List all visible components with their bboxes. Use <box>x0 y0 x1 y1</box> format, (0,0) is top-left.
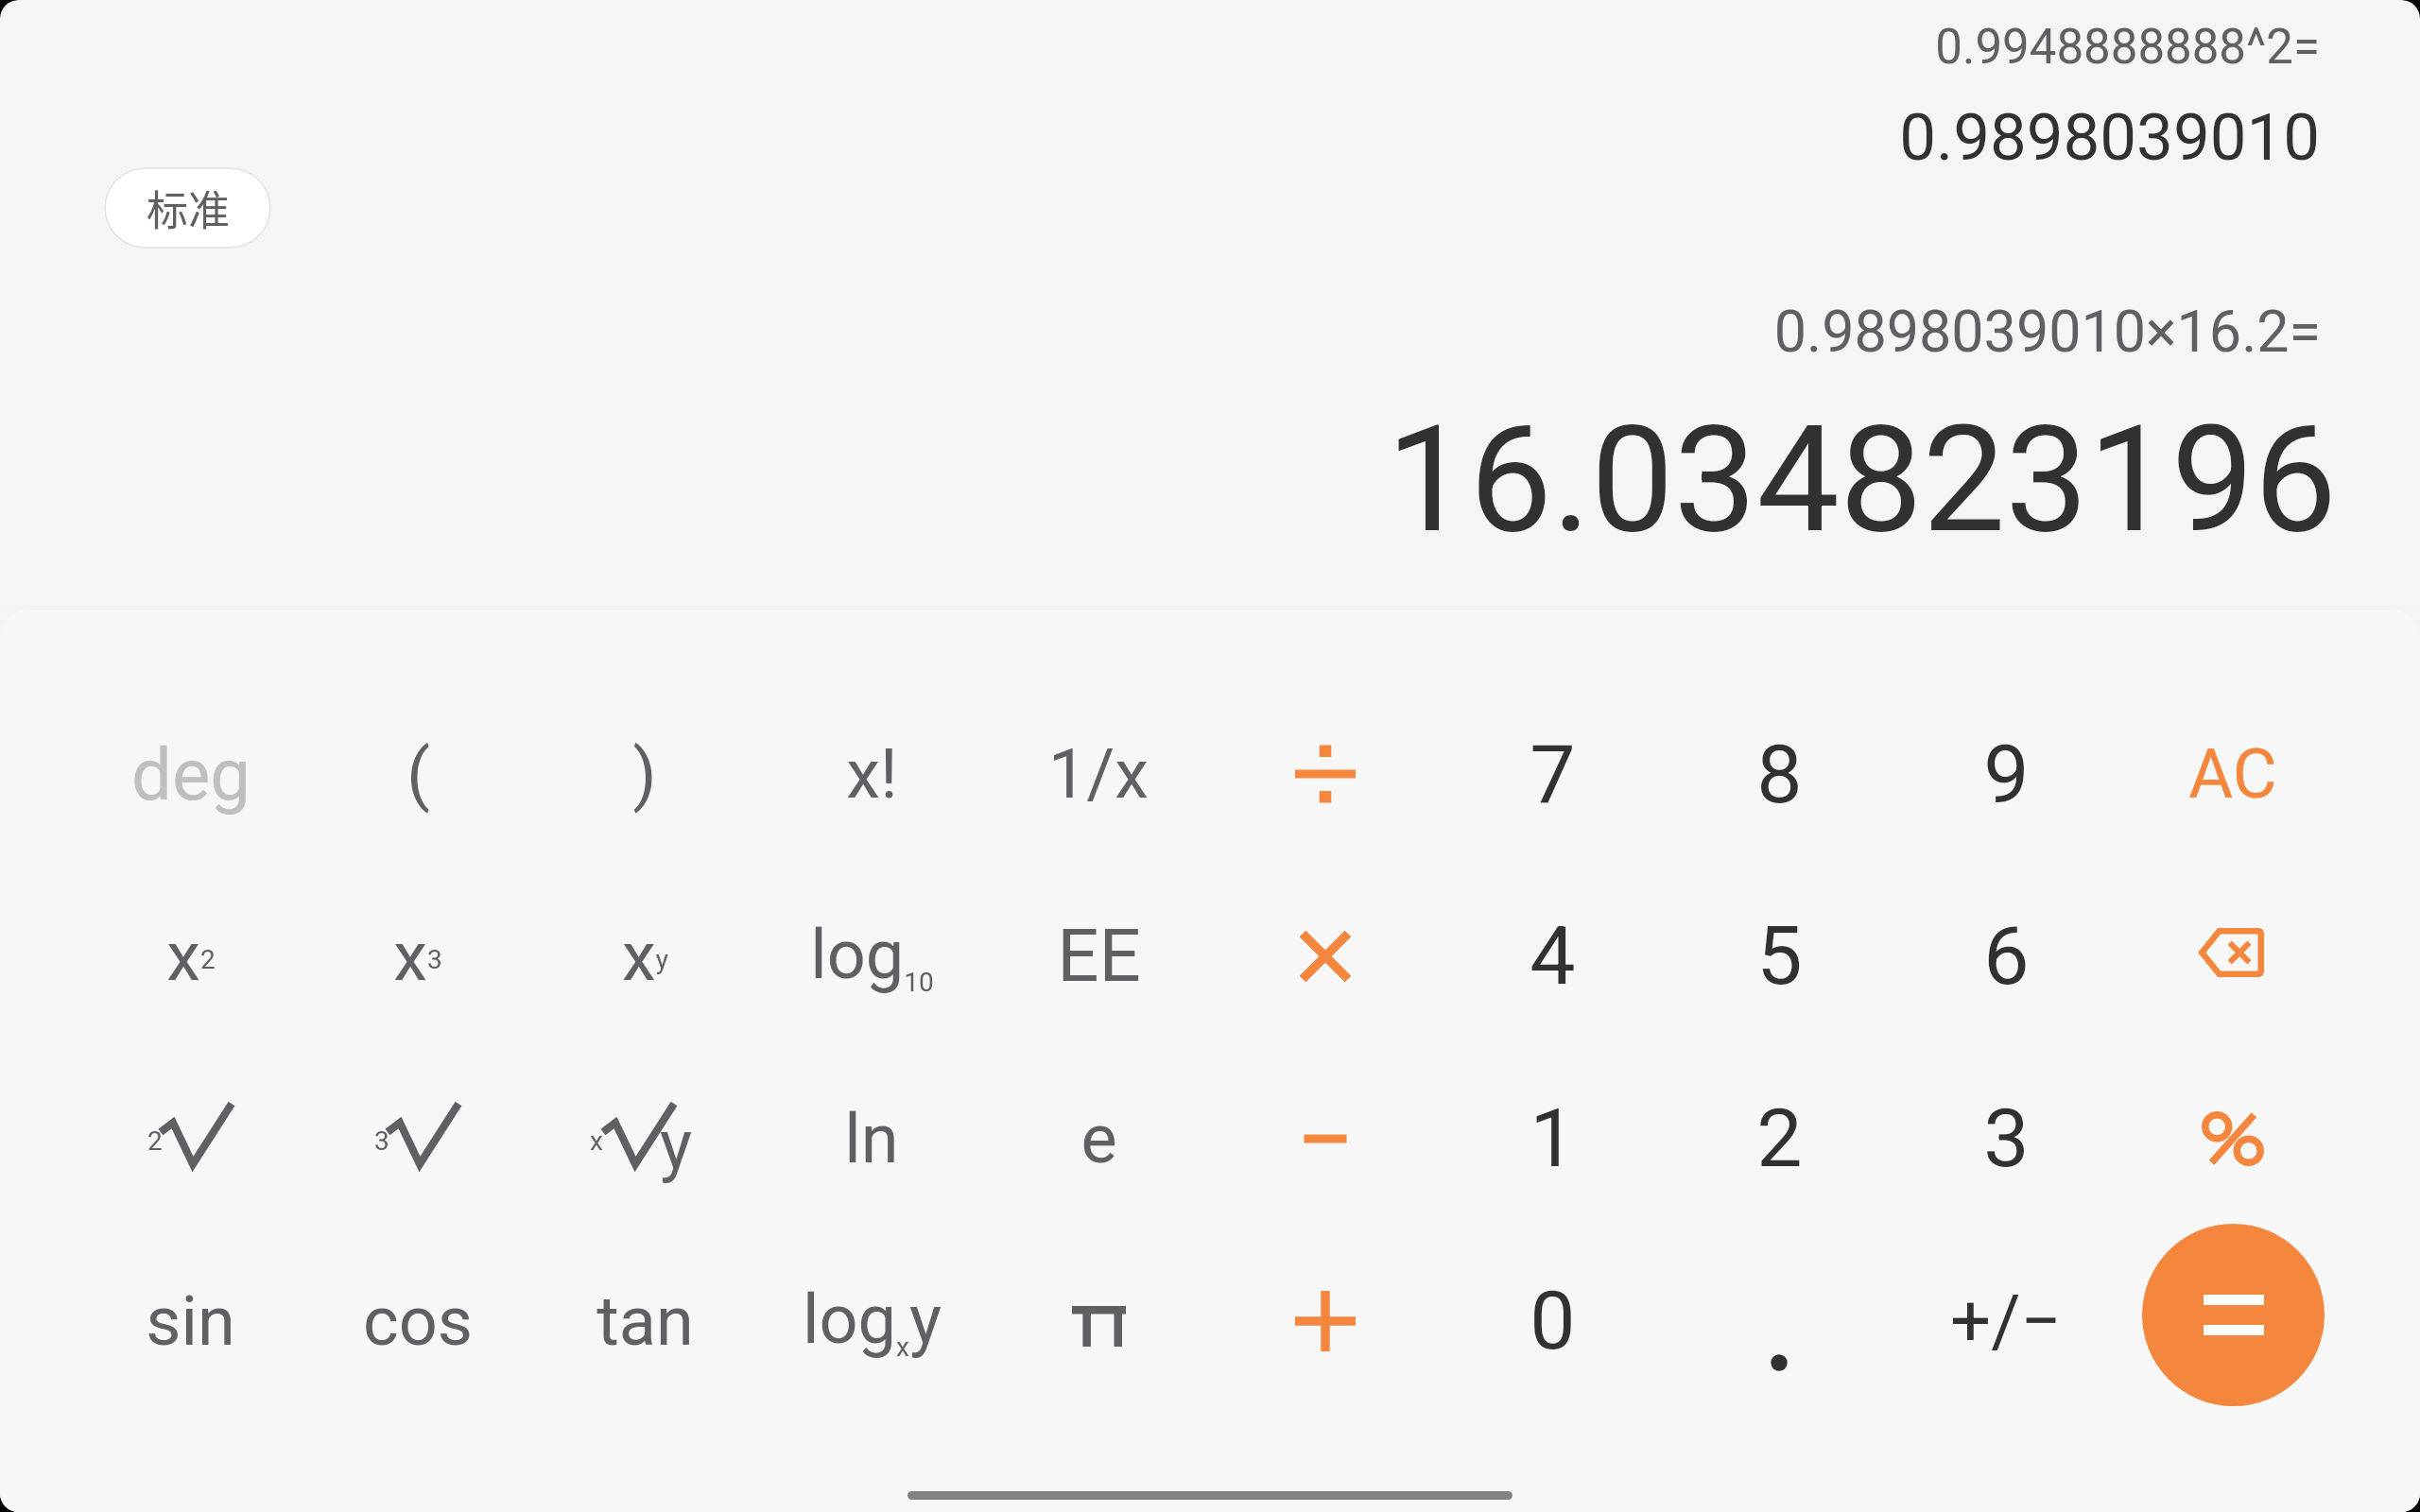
button[interactable]: 5 <box>1666 865 1893 1047</box>
staticText: log10 <box>810 915 934 998</box>
button[interactable]: +/− <box>1893 1229 2119 1412</box>
button[interactable]: 2 <box>77 1047 304 1229</box>
button[interactable]: x3 <box>304 865 531 1047</box>
staticText: x <box>590 1125 603 1157</box>
button[interactable]: cos <box>304 1229 531 1412</box>
staticText: 0.9948888888^2= <box>0 19 2320 76</box>
button[interactable]: Backspace <box>2176 900 2290 1013</box>
button[interactable]: Multiply <box>1269 900 1382 1013</box>
button[interactable]: 1/x <box>985 683 1212 865</box>
staticText: 1 <box>1530 1091 1576 1186</box>
button[interactable]: Multiply <box>1212 865 1439 1047</box>
button[interactable]: sin <box>77 1229 304 1412</box>
staticText: 1/x <box>1048 734 1149 814</box>
button[interactable]: deg <box>77 683 304 865</box>
button[interactable]: 3 <box>304 1047 531 1229</box>
staticText: 5 <box>1756 908 1803 1004</box>
button[interactable]: 2 <box>1666 1047 1893 1229</box>
staticText: +/− <box>1950 1279 2062 1363</box>
button[interactable]: Equals <box>2142 1224 2325 1406</box>
button[interactable]: xy <box>531 865 758 1047</box>
staticText: 3 <box>1983 1091 2030 1186</box>
button[interactable]: x2 <box>77 865 304 1047</box>
button[interactable]: tan <box>531 1229 758 1412</box>
staticText: cos <box>363 1281 473 1361</box>
button[interactable]: EE <box>985 865 1212 1047</box>
staticText: 3 <box>374 1125 389 1157</box>
button[interactable]: Percent <box>2176 1082 2290 1195</box>
button[interactable]: Plus <box>1269 1264 1382 1378</box>
button[interactable]: Divide <box>1269 717 1382 831</box>
staticText: EE <box>1057 913 1141 999</box>
button[interactable]: Equals <box>2119 1229 2346 1412</box>
button[interactable]: Decimal point <box>1722 1264 1836 1378</box>
staticText: e <box>1080 1099 1117 1178</box>
button[interactable]: 6 <box>1893 865 2119 1047</box>
button[interactable]: Minus <box>1269 1082 1382 1195</box>
staticText: xy <box>622 917 668 996</box>
button[interactable]: 1 <box>1439 1047 1666 1229</box>
staticText: x3 <box>393 917 442 996</box>
button[interactable]: x <box>531 1047 758 1229</box>
button[interactable]: Backspace <box>2119 865 2346 1047</box>
staticText: x2 <box>166 917 216 996</box>
button[interactable]: 7 <box>1439 683 1666 865</box>
button[interactable]: 标准 <box>104 167 271 249</box>
staticText: 0.9898039010×16.2= <box>0 298 2321 365</box>
staticText: 0 <box>1530 1273 1576 1368</box>
staticText: logxy <box>803 1280 942 1363</box>
button[interactable]: 8 <box>1666 683 1893 865</box>
staticText: tan <box>596 1281 694 1361</box>
staticText: y <box>660 1105 693 1184</box>
button[interactable]: ( <box>304 683 531 865</box>
staticText: 2 <box>1756 1091 1803 1186</box>
button[interactable]: logxy <box>758 1229 985 1412</box>
button[interactable]: Plus <box>1212 1229 1439 1412</box>
button[interactable]: x! <box>758 683 985 865</box>
button[interactable]: ) <box>531 683 758 865</box>
button[interactable]: Decimal point <box>1666 1229 1893 1412</box>
staticText: sin <box>146 1281 235 1361</box>
button[interactable]: Pi <box>1042 1264 1155 1378</box>
staticText: 标准 <box>147 178 230 238</box>
staticText: 6 <box>1983 908 2030 1004</box>
button[interactable]: AC <box>2119 683 2346 865</box>
staticText: 0.9898039010 <box>0 99 2320 176</box>
button[interactable]: log10 <box>758 865 985 1047</box>
staticText: 4 <box>1530 908 1576 1004</box>
staticText: deg <box>131 732 251 816</box>
button[interactable]: 9 <box>1893 683 2119 865</box>
button[interactable]: 3 <box>1893 1047 2119 1229</box>
button[interactable]: e <box>985 1047 1212 1229</box>
staticText: 7 <box>1530 727 1576 822</box>
staticText: ( <box>406 734 430 814</box>
button[interactable]: Minus <box>1212 1047 1439 1229</box>
staticText: 2 <box>147 1125 163 1157</box>
button[interactable]: Divide <box>1212 683 1439 865</box>
button[interactable]: ln <box>758 1047 985 1229</box>
button[interactable]: Percent <box>2119 1047 2346 1229</box>
button[interactable]: Pi <box>985 1229 1212 1412</box>
button[interactable]: 0 <box>1439 1229 1666 1412</box>
staticText: x! <box>846 734 898 814</box>
staticText: 9 <box>1983 727 2030 822</box>
staticText: AC <box>2188 734 2277 814</box>
staticText: ) <box>632 734 657 814</box>
staticText: ln <box>844 1099 899 1178</box>
button[interactable]: 4 <box>1439 865 1666 1047</box>
staticText: 16.034823196 <box>0 393 2337 566</box>
staticText: 8 <box>1756 727 1803 822</box>
